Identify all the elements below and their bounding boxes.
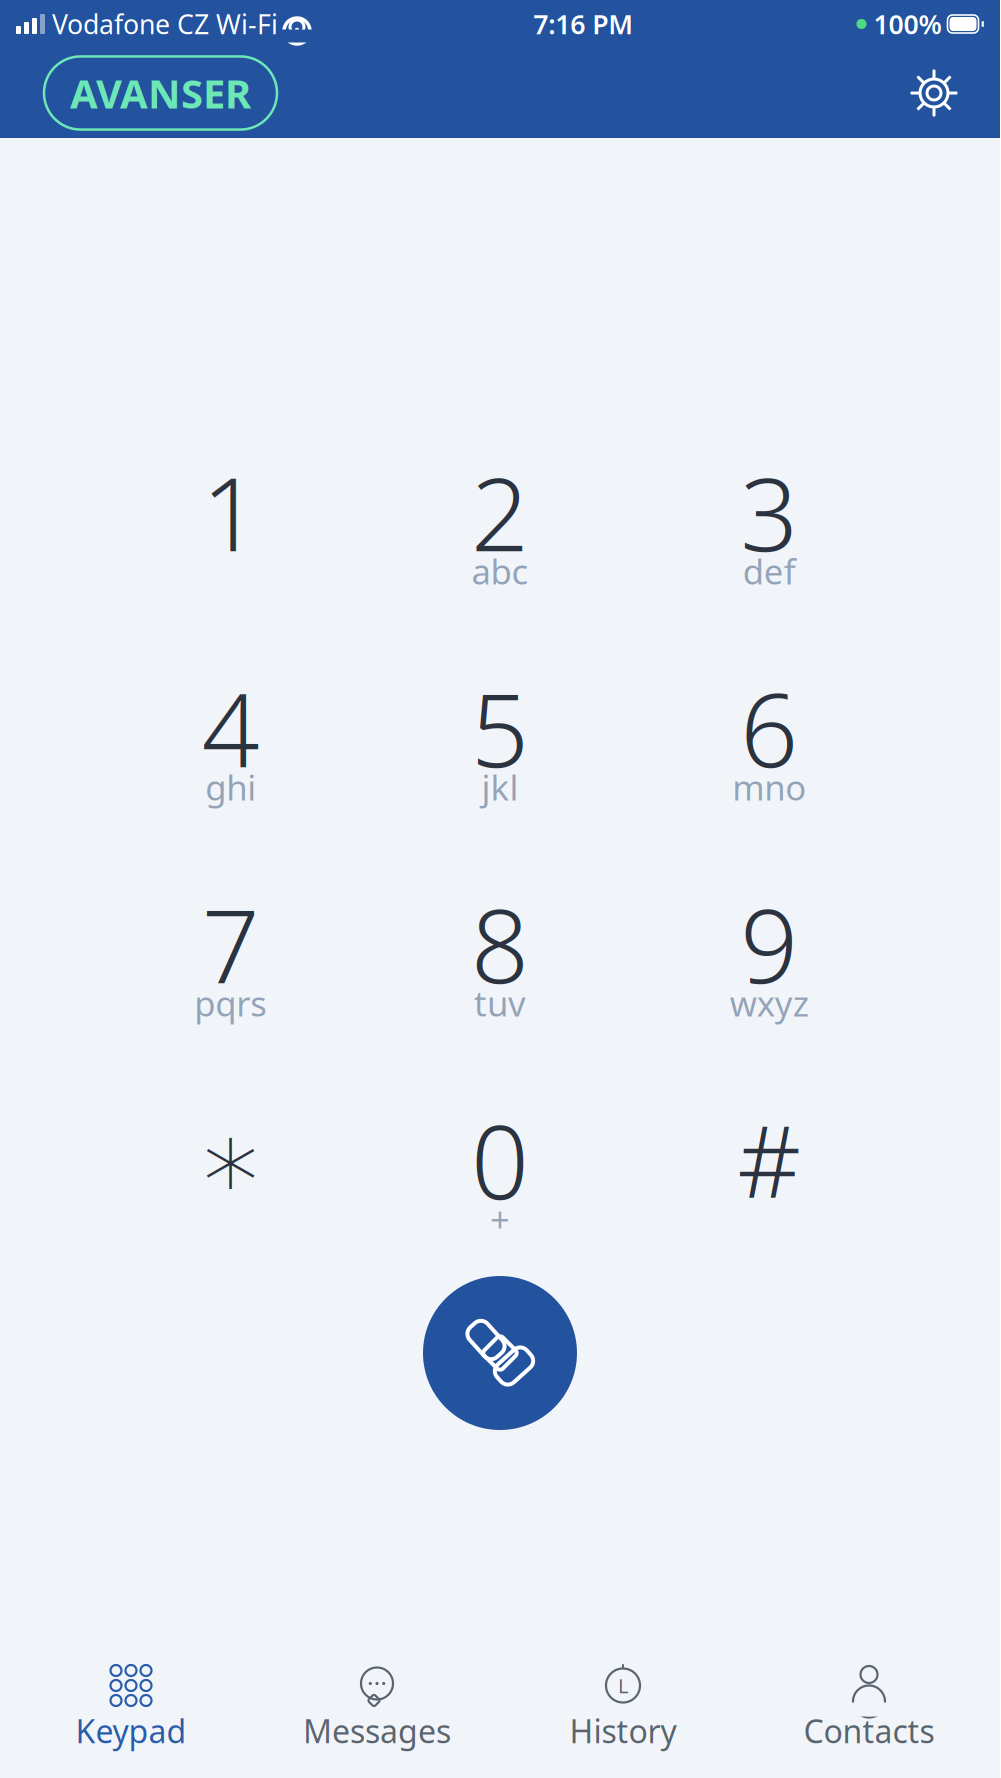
staticText: def [743,548,796,594]
button[interactable]: 8 [365,900,635,1018]
staticText: History [569,1709,676,1752]
staticText: 8 [471,877,529,1011]
staticText: 4 [202,661,260,795]
staticText: wxyz [730,980,809,1026]
staticText: 7 [202,877,260,1011]
button[interactable]: 4 [96,684,365,802]
button[interactable]: 5 [365,684,635,802]
button[interactable]: 6 [635,684,904,802]
button[interactable]: # [635,1116,904,1234]
staticText: jkl [481,764,518,810]
button[interactable]: 7 [96,900,365,1018]
button[interactable]: AVANSER [44,56,277,129]
button[interactable]: Keypad [8,1657,254,1762]
staticText: Messages [303,1709,451,1752]
staticText: Keypad [75,1709,186,1752]
staticText: L [618,1672,628,1699]
staticText: 7:16 PM [533,6,633,42]
button[interactable]: Contacts [746,1657,992,1762]
button[interactable]: 3 [635,468,904,586]
staticText: 100% [866,6,941,42]
button[interactable]: 2 [365,468,635,586]
staticText: 2 [471,445,529,579]
staticText: 1 [202,445,260,579]
button[interactable]: Call [423,1276,577,1430]
staticText: Vodafone CZ Wi-Fi [45,6,278,42]
staticText: # [737,1094,801,1225]
button[interactable]: 1 [96,468,365,586]
button[interactable]: L [500,1657,746,1762]
button[interactable]: 0 [365,1116,635,1234]
button[interactable]: ∗ [96,1116,365,1234]
button[interactable]: Messages [254,1657,500,1762]
staticText: ∗ [196,1096,266,1223]
staticText: AVANSER [70,66,251,119]
staticText: abc [471,548,528,594]
staticText: tuv [474,980,526,1026]
staticText: 3 [740,445,798,579]
staticText: pqrs [194,980,267,1026]
staticText: 9 [740,877,798,1011]
button[interactable]: 9 [635,900,904,1018]
staticText: ghi [205,764,256,810]
staticText: Contacts [803,1709,934,1752]
button[interactable]: Settings [912,71,956,115]
staticText: mno [732,764,806,810]
staticText: 5 [471,661,529,795]
staticText: 0 [471,1093,529,1227]
staticText: + [490,1196,510,1242]
staticText: 6 [740,661,798,795]
